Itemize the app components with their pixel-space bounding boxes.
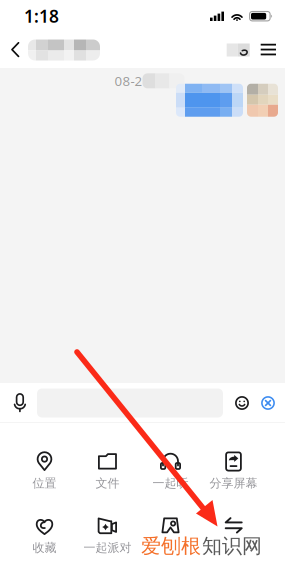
staticText: 分享屏幕 xyxy=(209,476,257,491)
button[interactable] xyxy=(139,515,202,556)
button[interactable]: 收藏 xyxy=(13,515,76,555)
staticText: 文件 xyxy=(95,476,119,491)
staticText: 08-2 xyxy=(114,72,142,90)
button[interactable]: 文件 xyxy=(76,451,139,491)
button[interactable]: 一起派对 xyxy=(76,515,139,555)
staticText: 知识网 xyxy=(202,534,262,558)
button[interactable]: Menu xyxy=(254,34,285,66)
button[interactable]: Back xyxy=(4,33,27,67)
staticText: 爱刨根 xyxy=(141,534,201,558)
button[interactable]: Voice message xyxy=(1,383,37,423)
button[interactable]: 分享屏幕 xyxy=(202,451,265,491)
button[interactable]: 一起听 xyxy=(139,451,202,491)
staticText: 一起听 xyxy=(152,476,188,491)
button[interactable]: Close panel xyxy=(255,384,285,422)
staticText: 收藏 xyxy=(32,540,56,555)
staticText: 一起派对 xyxy=(83,540,131,555)
button[interactable]: 位置 xyxy=(13,451,76,491)
staticText: 1:18 xyxy=(24,4,59,27)
button[interactable]: Emoji xyxy=(223,384,255,422)
button[interactable] xyxy=(202,515,265,556)
staticText: 位置 xyxy=(32,476,56,491)
